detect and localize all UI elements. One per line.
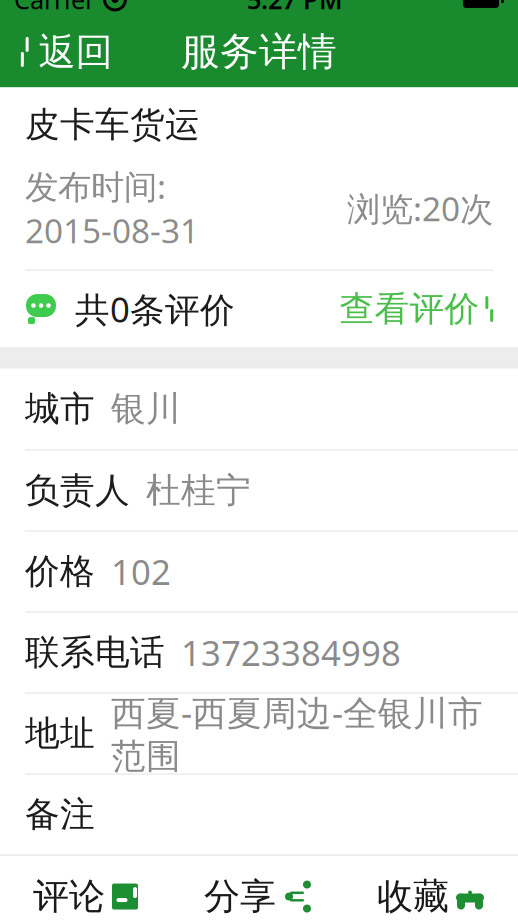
staticText: 5:27 PM — [247, 0, 343, 16]
button[interactable]: 返回 — [0, 18, 126, 86]
staticText: 西夏-西夏周边-全银川市范围 — [111, 689, 483, 778]
staticText: 皮卡车货运 — [25, 103, 200, 146]
staticText: 共0条评价 — [75, 286, 235, 332]
staticText: 服务详情 — [181, 28, 337, 76]
staticText: 浏览:20次 — [347, 186, 493, 230]
staticText: 城市 — [25, 388, 95, 430]
staticText: 银川 — [111, 388, 181, 430]
staticText: 评论 — [33, 874, 105, 919]
staticText: 收藏 — [377, 874, 449, 919]
staticText: 杜桂宁 — [146, 469, 251, 512]
button[interactable]: 分享 — [172, 856, 344, 920]
staticText: 102 — [111, 548, 171, 594]
staticText: 联系电话 — [25, 631, 165, 674]
staticText: 负责人 — [25, 469, 130, 512]
staticText: 分享 — [204, 874, 276, 919]
staticText: 返回 — [38, 29, 112, 75]
staticText: 价格 — [25, 550, 95, 593]
button[interactable]: 评论 — [0, 856, 172, 920]
staticText: 地址 — [25, 712, 95, 755]
staticText: Carrier — [14, 0, 95, 16]
staticText: 查看评价 — [339, 288, 479, 330]
staticText: 13723384998 — [181, 629, 401, 675]
button[interactable]: 收藏 — [344, 856, 518, 920]
staticText: 备注 — [25, 793, 95, 836]
button[interactable]: 共0条评价 — [0, 271, 518, 348]
staticText: 发布时间:2015-08-31 — [25, 164, 199, 252]
